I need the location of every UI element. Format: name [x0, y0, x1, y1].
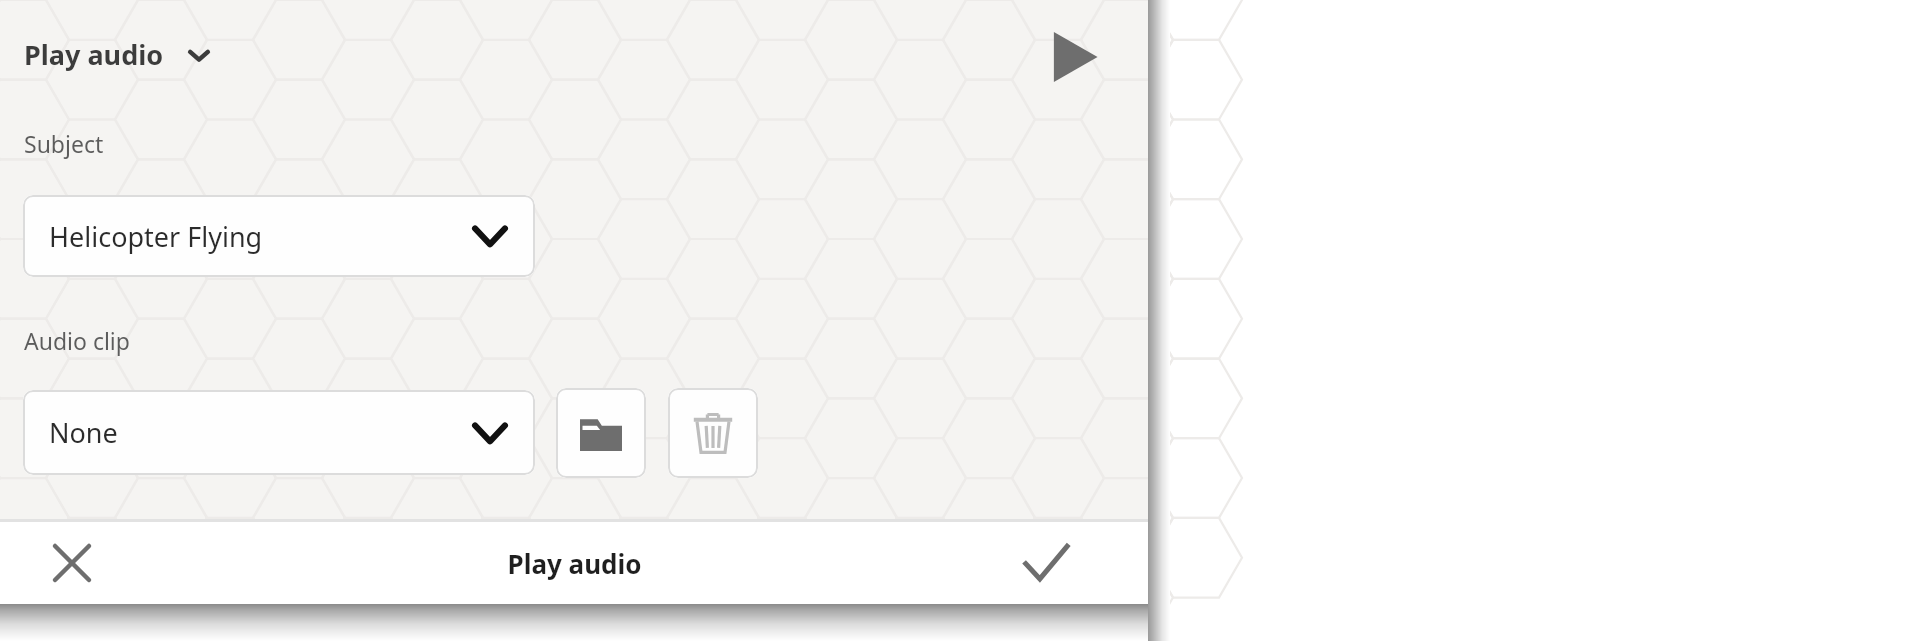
button[interactable]: Browse for audio clip	[556, 388, 646, 478]
staticText: Play audio	[24, 36, 164, 73]
button[interactable]: Helicopter Flying	[23, 195, 535, 277]
button[interactable]: Delete audio clip	[668, 388, 758, 478]
staticText: None	[49, 414, 118, 451]
staticText: Subject	[24, 128, 104, 159]
staticText: Play audio	[507, 546, 642, 581]
button[interactable]: None	[23, 390, 535, 475]
staticText: Audio clip	[24, 325, 130, 356]
staticText: Helicopter Flying	[49, 218, 263, 255]
button[interactable]: Confirm	[1004, 522, 1088, 604]
button[interactable]: Play audio	[24, 36, 212, 73]
button[interactable]: Play	[1040, 22, 1110, 92]
button[interactable]: Cancel	[30, 522, 114, 604]
